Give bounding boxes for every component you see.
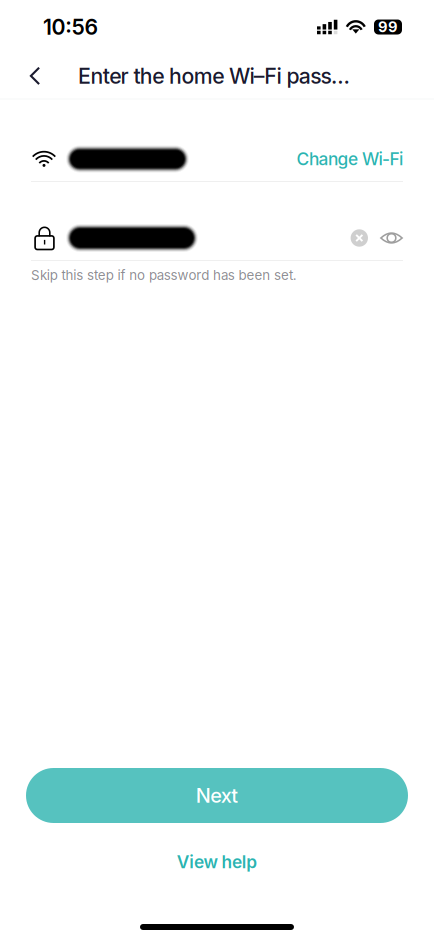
button[interactable]: Back bbox=[15, 54, 55, 98]
button[interactable]: Next bbox=[26, 768, 408, 823]
staticText: Skip this step if no password has been s… bbox=[31, 267, 297, 283]
staticText: 99 bbox=[378, 18, 398, 36]
staticText: 10:56 bbox=[43, 14, 98, 40]
button[interactable]: View help bbox=[177, 852, 257, 872]
staticText: Enter the home Wi–Fi pass… bbox=[78, 63, 350, 89]
staticText: View help bbox=[177, 851, 257, 872]
staticText: Next bbox=[196, 783, 238, 808]
button[interactable]: Show password bbox=[380, 230, 403, 246]
button[interactable]: Clear text bbox=[351, 229, 368, 247]
staticText: Change Wi-Fi bbox=[296, 148, 403, 169]
button[interactable]: Change Wi-Fi bbox=[296, 148, 403, 169]
